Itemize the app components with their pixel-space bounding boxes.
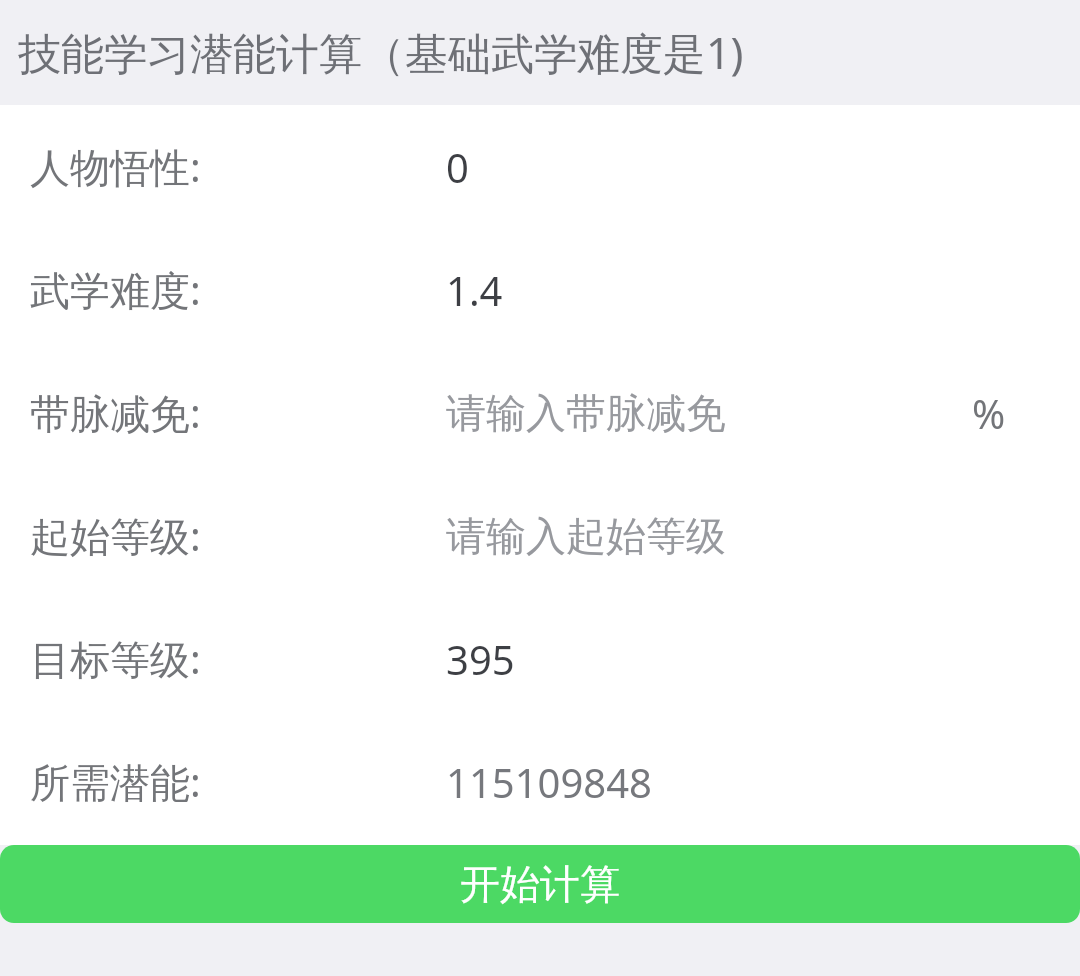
button[interactable]: 人物悟性:	[0, 105, 1080, 228]
staticText: 武学难度:	[30, 262, 201, 317]
staticText: 带脉减免:	[30, 385, 201, 440]
button[interactable]: 武学难度:	[0, 228, 1080, 351]
staticText: 请输入带脉减免	[446, 388, 726, 438]
staticText: 技能学习潜能计算（基础武学难度是1)	[18, 23, 744, 82]
button[interactable]: 带脉减免:	[0, 351, 1080, 474]
staticText: 115109848	[446, 755, 652, 809]
staticText: 请输入起始等级	[446, 511, 726, 561]
staticText: 所需潜能:	[30, 754, 201, 809]
button[interactable]: 开始计算	[0, 845, 1080, 923]
staticText: 395	[446, 632, 515, 686]
staticText: %	[972, 386, 1006, 440]
button[interactable]: 所需潜能:	[0, 720, 1080, 843]
staticText: 开始计算	[460, 859, 620, 909]
button[interactable]: 起始等级:	[0, 474, 1080, 597]
staticText: 0	[446, 140, 469, 194]
staticText: 起始等级:	[30, 508, 201, 563]
staticText: 1.4	[446, 263, 503, 317]
staticText: 人物悟性:	[30, 139, 201, 194]
button[interactable]: 目标等级:	[0, 597, 1080, 720]
staticText: 目标等级:	[30, 631, 201, 686]
